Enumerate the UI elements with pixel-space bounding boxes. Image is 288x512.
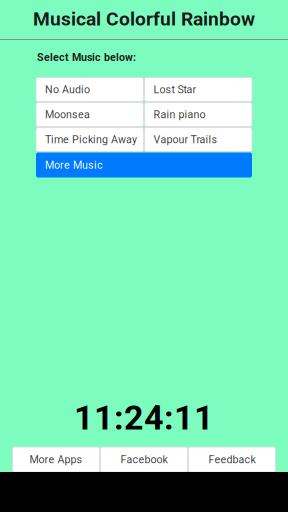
staticText: Feedback bbox=[208, 453, 255, 466]
staticText: Rain piano bbox=[153, 108, 205, 121]
staticText: Facebook bbox=[120, 453, 167, 466]
staticText: Select Music below: bbox=[37, 51, 136, 63]
staticText: Lost Star bbox=[153, 83, 196, 96]
button[interactable]: Lost Star bbox=[144, 77, 252, 101]
button[interactable]: More Music bbox=[36, 152, 252, 177]
button[interactable]: Rain piano bbox=[144, 102, 252, 126]
button[interactable]: Moonsea bbox=[36, 102, 143, 126]
staticText: More Music bbox=[45, 159, 103, 171]
button[interactable]: Feedback bbox=[188, 447, 275, 472]
button[interactable]: No Audio bbox=[36, 77, 143, 101]
button[interactable]: Vapour Trails bbox=[144, 127, 252, 151]
staticText: Time Picking Away bbox=[45, 133, 137, 146]
button[interactable]: Time Picking Away bbox=[36, 127, 143, 151]
staticText: 11:24:11 bbox=[74, 398, 214, 438]
staticText: Vapour Trails bbox=[153, 133, 217, 146]
staticText: More Apps bbox=[29, 453, 82, 466]
button[interactable]: Facebook bbox=[100, 447, 187, 472]
staticText: No Audio bbox=[45, 83, 90, 96]
staticText: Musical Colorful Rainbow bbox=[33, 8, 255, 30]
staticText: Moonsea bbox=[45, 108, 90, 121]
button[interactable]: More Apps bbox=[12, 447, 99, 472]
